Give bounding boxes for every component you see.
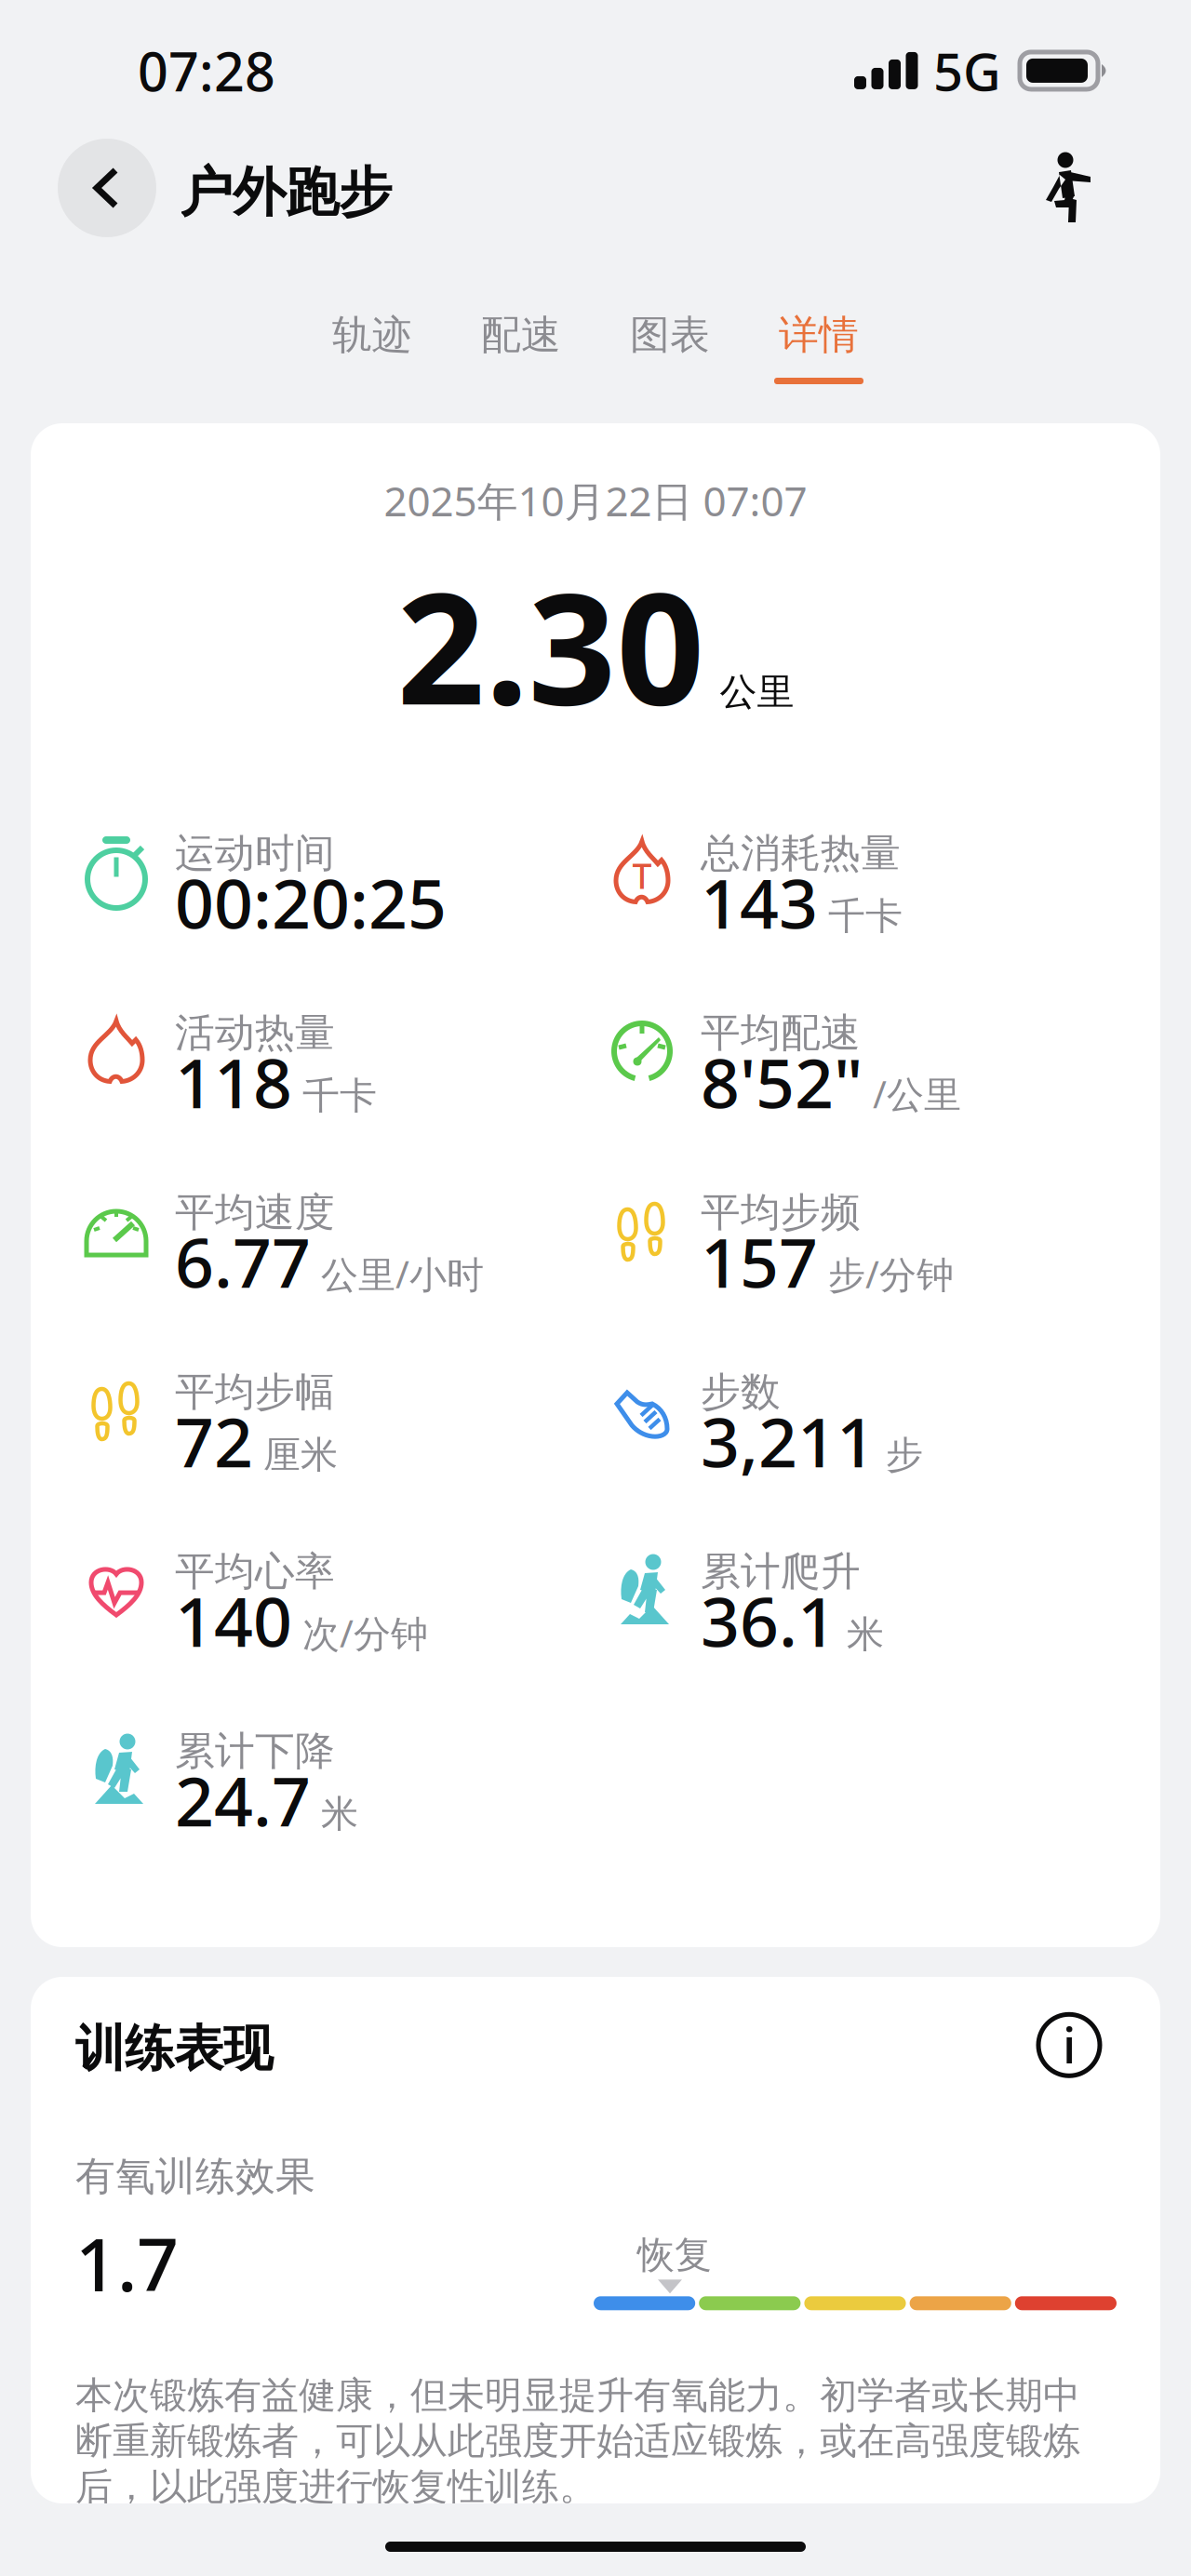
staticText: 有氧训练效果 bbox=[75, 2152, 315, 2201]
staticText: 次/分钟 bbox=[302, 1608, 428, 1658]
staticText: 5G bbox=[933, 36, 1001, 105]
staticText: 157 bbox=[701, 1216, 818, 1307]
staticText: 千卡 bbox=[302, 1073, 377, 1119]
staticText: 户外跑步 bbox=[180, 160, 392, 225]
staticText: 恢复 bbox=[637, 2232, 712, 2278]
staticText: 平均步幅 bbox=[175, 1368, 335, 1416]
staticText: 143 bbox=[701, 857, 818, 947]
staticText: /公里 bbox=[873, 1069, 961, 1118]
staticText: 步数 bbox=[701, 1368, 781, 1416]
staticText: 2025年10月22日 07:07 bbox=[384, 473, 807, 528]
staticText: 米 bbox=[847, 1612, 884, 1657]
staticText: 公里/小时 bbox=[321, 1249, 484, 1298]
staticText: 07:28 bbox=[138, 35, 275, 106]
staticText: 00:20:25 bbox=[175, 857, 447, 947]
staticText: 总消耗热量 bbox=[701, 829, 901, 878]
button[interactable]: 配速 bbox=[462, 312, 581, 384]
staticText: 配速 bbox=[481, 311, 561, 359]
staticText: 平均心率 bbox=[175, 1547, 335, 1596]
staticText: 1.7 bbox=[75, 2214, 179, 2312]
staticText: 米 bbox=[321, 1791, 358, 1837]
button[interactable]: 详情 bbox=[759, 312, 878, 384]
staticText: 2.30 bbox=[397, 543, 705, 747]
staticText: 24.7 bbox=[175, 1755, 311, 1845]
staticText: 3,211 bbox=[701, 1395, 876, 1486]
staticText: 步 bbox=[886, 1432, 923, 1478]
staticText: 厘米 bbox=[263, 1432, 338, 1478]
button[interactable]: 运动类型 bbox=[1036, 146, 1101, 230]
staticText: 轨迹 bbox=[332, 311, 412, 359]
staticText: 步/分钟 bbox=[828, 1249, 954, 1298]
button[interactable]: 图表 bbox=[610, 312, 729, 384]
staticText: 平均配速 bbox=[701, 1008, 861, 1057]
button[interactable]: 返回 bbox=[58, 139, 156, 237]
staticText: 运动时间 bbox=[175, 829, 335, 878]
staticText: 140 bbox=[175, 1575, 292, 1666]
staticText: i bbox=[1063, 2011, 1076, 2077]
staticText: 6.77 bbox=[175, 1216, 311, 1307]
button[interactable]: 说明 bbox=[1037, 2013, 1102, 2078]
staticText: 118 bbox=[175, 1036, 292, 1127]
staticText: 累计爬升 bbox=[701, 1547, 861, 1596]
staticText: 详情 bbox=[779, 311, 859, 359]
staticText: 36.1 bbox=[701, 1575, 836, 1666]
staticText: 8'52" bbox=[701, 1036, 863, 1127]
staticText: 平均速度 bbox=[175, 1188, 335, 1237]
staticText: 图表 bbox=[630, 311, 710, 359]
staticText: 活动热量 bbox=[175, 1008, 335, 1057]
staticText: 本次锻炼有益健康，但未明显提升有氧能力。初学者或长期中断重新锻炼者，可以从此强度… bbox=[75, 2373, 1080, 2510]
staticText: 72 bbox=[175, 1395, 253, 1486]
staticText: 平均步频 bbox=[701, 1188, 861, 1237]
staticText: 公里 bbox=[720, 669, 794, 715]
staticText: 训练表现 bbox=[75, 2018, 273, 2079]
staticText: T bbox=[632, 852, 652, 898]
staticText: 累计下降 bbox=[175, 1727, 335, 1775]
button[interactable]: 轨迹 bbox=[313, 312, 432, 384]
staticText: 千卡 bbox=[828, 893, 903, 939]
